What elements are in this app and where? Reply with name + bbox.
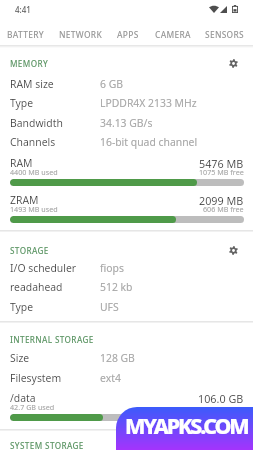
button[interactable]: NETWORK [56, 22, 105, 45]
staticText: INTERNAL STORAGE [10, 334, 94, 345]
staticText: 106.0 GB [198, 391, 244, 406]
staticText: fiops [100, 261, 124, 275]
staticText: Channels [10, 135, 56, 149]
button[interactable]: BATTERY [2, 22, 48, 45]
staticText: 4400 MB used [10, 167, 58, 177]
staticText: 16-bit quad channel [100, 135, 198, 149]
button[interactable]: SENSORS [202, 22, 247, 45]
staticText: 606 MB free [203, 204, 244, 214]
staticText: readahead [10, 280, 63, 294]
button[interactable]: I/O scheduler [0, 258, 253, 277]
staticText: CAMERA [155, 29, 191, 40]
staticText: 2099 MB [199, 193, 244, 208]
staticText: Filesystem [10, 371, 62, 385]
staticText: 4:41 [15, 4, 31, 15]
button[interactable]: Channels [0, 132, 253, 151]
staticText: 1075 MB free [199, 167, 244, 177]
staticText: SYSTEM STORAGE [10, 440, 84, 450]
staticText: UFS [100, 300, 119, 314]
staticText: LPDDR4X 2133 MHz [100, 96, 197, 110]
staticText: MYAPKS.COM [125, 411, 248, 440]
staticText: 512 kb [100, 280, 133, 294]
staticText: MEMORY [10, 58, 49, 69]
button[interactable]: RAM size [0, 74, 253, 93]
staticText: Bandwidth [10, 116, 63, 130]
button[interactable]: readahead [0, 277, 253, 296]
staticText: Size [10, 351, 30, 365]
staticText: 42.7 GB used [10, 402, 55, 412]
staticText: 128 GB [100, 351, 135, 365]
staticText: RAM [10, 156, 33, 170]
button[interactable]: Type [0, 93, 253, 112]
button[interactable]: Type [0, 297, 253, 316]
staticText: ZRAM [10, 193, 39, 207]
staticText: SENSORS [205, 29, 245, 40]
button[interactable]: Filesystem [0, 368, 253, 387]
staticText: Type [10, 96, 34, 110]
staticText: RAM size [10, 77, 54, 91]
staticText: ext4 [100, 371, 121, 385]
staticText: NETWORK [59, 29, 102, 40]
button[interactable]: /data [0, 391, 253, 421]
staticText: I/O scheduler [10, 261, 77, 275]
button[interactable]: ZRAM [0, 193, 253, 223]
staticText: /data [10, 391, 36, 405]
button[interactable]: Size [0, 348, 253, 367]
button[interactable]: Settings [225, 242, 242, 259]
button[interactable]: RAM [0, 156, 253, 186]
staticText: BATTERY [7, 29, 44, 40]
button[interactable]: APPS [112, 22, 143, 45]
button[interactable]: Bandwidth [0, 113, 253, 132]
button[interactable]: CAMERA [152, 22, 194, 45]
staticText: Type [10, 300, 34, 314]
staticText: 1493 MB used [10, 204, 58, 214]
staticText: 6 GB [100, 77, 123, 91]
button[interactable]: Settings [225, 55, 242, 72]
staticText: 34.13 GB/s [100, 116, 153, 130]
staticText: STORAGE [10, 245, 49, 256]
staticText: APPS [117, 29, 139, 40]
staticText: 5476 MB [199, 156, 244, 171]
